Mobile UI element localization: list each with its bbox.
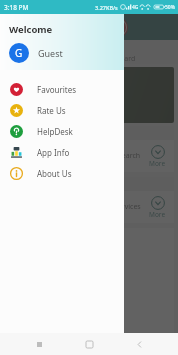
staticText: Favourites: [37, 84, 77, 95]
staticText: Guest: [38, 47, 63, 59]
button[interactable]: Favourites: [0, 79, 124, 100]
staticText: Rate Us: [37, 105, 66, 116]
staticText: 3:18 PM: [4, 3, 29, 12]
button[interactable]: G: [9, 43, 63, 63]
staticText: G: [15, 46, 23, 60]
staticText: More: [149, 159, 166, 168]
staticText: 4G: [132, 4, 139, 11]
button[interactable]: Back: [128, 333, 150, 355]
staticText: More: [149, 210, 166, 219]
button[interactable]: Close navigation drawer: [0, 14, 178, 333]
button[interactable]: HelpDesk: [0, 121, 124, 142]
staticText: App Info: [37, 147, 70, 158]
button[interactable]: More: [149, 196, 174, 219]
button[interactable]: Rate Us: [0, 100, 124, 121]
button[interactable]: More: [149, 145, 174, 168]
staticText: Welcome: [9, 23, 53, 36]
button[interactable]: About Us: [0, 163, 124, 184]
staticText: HelpDesk: [37, 126, 73, 137]
button[interactable]: App Info: [0, 142, 124, 163]
button[interactable]: Recents: [28, 333, 50, 355]
button[interactable]: Home: [78, 333, 100, 355]
staticText: 50%: [165, 4, 175, 11]
staticText: Dashboard: [99, 54, 136, 64]
staticText: 3.27KB/s: [95, 4, 118, 11]
staticText: About Us: [37, 168, 72, 179]
staticText: Services: [114, 202, 141, 212]
staticText: Search: [118, 151, 141, 161]
